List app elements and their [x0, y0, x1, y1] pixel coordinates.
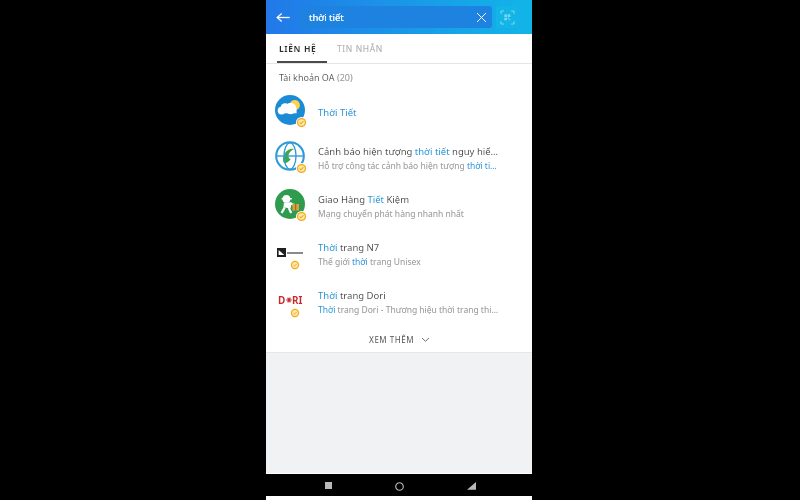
staticText: Giao Hàng Tiết Kiệm	[318, 193, 410, 206]
button[interactable]: Back	[461, 482, 481, 496]
button[interactable]: Back	[266, 0, 300, 34]
button[interactable]: Giao Hàng Tiết Kiệm	[266, 182, 532, 230]
staticText: (20)	[337, 71, 353, 83]
staticText: Thời Tiết	[318, 106, 357, 119]
staticText: thời tiết	[309, 11, 344, 24]
staticText: Cảnh báo hiện tượng thời tiết nguy hiể…	[318, 145, 499, 158]
staticText: Thời trang N7	[318, 241, 380, 254]
staticText: Thời trang Dori	[318, 289, 386, 302]
staticText: Thời trang Dori - Thương hiệu thời trang…	[318, 304, 499, 316]
button[interactable]: D	[266, 278, 532, 326]
button[interactable]: Thời trang N7	[266, 230, 532, 278]
staticText: Tài khoản OA	[279, 71, 337, 83]
button[interactable]: Thời Tiết	[266, 90, 532, 134]
staticText: Hỗ trợ công tác cảnh báo hiện tượng thời…	[318, 160, 497, 172]
staticText: TIN NHẮN	[337, 43, 383, 55]
staticText: RI	[292, 293, 303, 307]
button[interactable]: thời tiết	[300, 6, 492, 28]
staticText: Mạng chuyển phát hàng nhanh nhất	[318, 208, 464, 220]
button[interactable]: Scan QR code	[496, 6, 518, 28]
staticText: XEM THÊM	[369, 334, 415, 345]
button[interactable]: Home	[389, 482, 409, 496]
button[interactable]: Cảnh báo hiện tượng thời tiết nguy hiể…	[266, 134, 532, 182]
button[interactable]: LIÊN HỆ	[279, 34, 317, 63]
button[interactable]: Clear	[470, 6, 492, 28]
staticText: Thế giới thời trang Unisex	[318, 256, 421, 268]
staticText: D	[278, 293, 286, 307]
button[interactable]: XEM THÊM	[266, 326, 532, 352]
button[interactable]: Recent apps	[318, 482, 338, 496]
button[interactable]: TIN NHẮN	[337, 34, 383, 63]
staticText: LIÊN HỆ	[279, 43, 317, 55]
